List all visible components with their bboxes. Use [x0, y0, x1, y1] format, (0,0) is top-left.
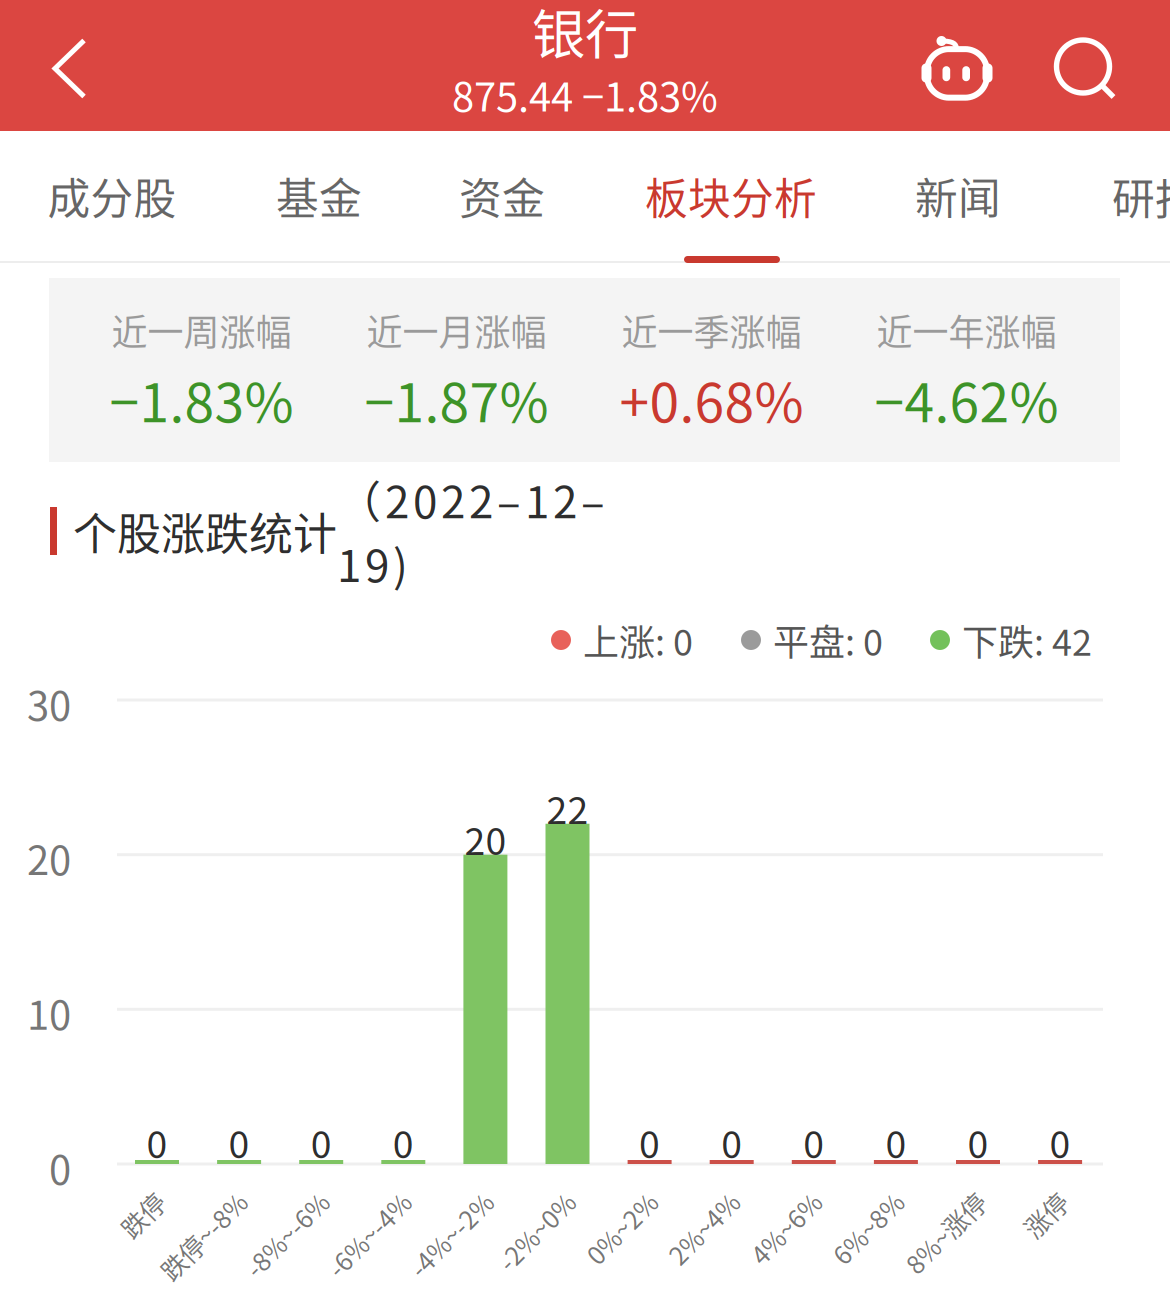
staticText: 上涨: 0	[583, 614, 693, 666]
staticText: -6%~-4%	[335, 1263, 441, 1300]
staticText: +0.68%	[619, 360, 803, 438]
staticText: 基金	[276, 165, 362, 227]
staticText: 0%~2%	[600, 1263, 688, 1300]
staticText: 8%~涨停	[915, 1263, 1016, 1300]
staticText: 个股涨跌统计	[73, 499, 337, 563]
button[interactable]: AI Assistant	[902, 1, 1012, 132]
staticText: -4%~-2%	[417, 1263, 523, 1300]
button[interactable]: 基金	[204, 131, 434, 261]
staticText: 22	[546, 781, 588, 835]
staticText: 近一周涨幅	[111, 304, 291, 356]
button[interactable]: 新闻	[843, 131, 1073, 261]
staticText: 板块分析	[645, 165, 817, 227]
staticText: 平盘: 0	[773, 614, 883, 666]
staticText: 银行	[532, 0, 638, 70]
staticText: 0	[639, 1115, 660, 1169]
staticText: 20	[27, 829, 71, 887]
button[interactable]: 成分股	[0, 131, 227, 261]
staticText: −1.87%	[364, 360, 548, 438]
staticText: 0	[967, 1115, 988, 1169]
staticText: 新闻	[915, 165, 1001, 227]
button[interactable]: 研报	[1040, 131, 1170, 261]
staticText: 30	[27, 674, 71, 732]
staticText: 0	[311, 1115, 332, 1169]
button[interactable]: 资金	[387, 131, 617, 261]
staticText: -2%~0%	[509, 1263, 606, 1300]
staticText: 6%~8%	[846, 1263, 934, 1300]
staticText: 0	[1050, 1115, 1071, 1169]
staticText: 0	[146, 1115, 167, 1169]
staticText: 下跌: 42	[962, 614, 1092, 666]
staticText: 跌停	[145, 1263, 195, 1300]
button[interactable]: Search	[1029, 2, 1139, 133]
staticText: −4.62%	[874, 360, 1058, 438]
staticText: 10	[27, 983, 71, 1041]
staticText: （2022–12–19)	[337, 467, 605, 595]
staticText: 875.44 −1.83%	[452, 65, 718, 123]
button[interactable]: Back	[15, 3, 125, 134]
staticText: 0	[49, 1138, 71, 1196]
staticText: 近一年涨幅	[876, 304, 1056, 356]
staticText: 0	[229, 1115, 250, 1169]
staticText: 0	[721, 1115, 742, 1169]
staticText: 近一季涨幅	[621, 304, 801, 356]
staticText: 0	[393, 1115, 414, 1169]
staticText: 近一月涨幅	[366, 304, 546, 356]
staticText: 20	[464, 812, 506, 866]
staticText: 资金	[459, 165, 545, 227]
staticText: 研报	[1112, 165, 1170, 227]
button[interactable]: 板块分析	[616, 131, 846, 261]
staticText: -8%~-6%	[253, 1263, 359, 1300]
staticText: 0	[885, 1115, 906, 1169]
staticText: 0	[803, 1115, 824, 1169]
staticText: −1.83%	[109, 360, 293, 438]
staticText: 跌停~-8%	[167, 1263, 277, 1300]
staticText: 成分股	[47, 165, 176, 227]
